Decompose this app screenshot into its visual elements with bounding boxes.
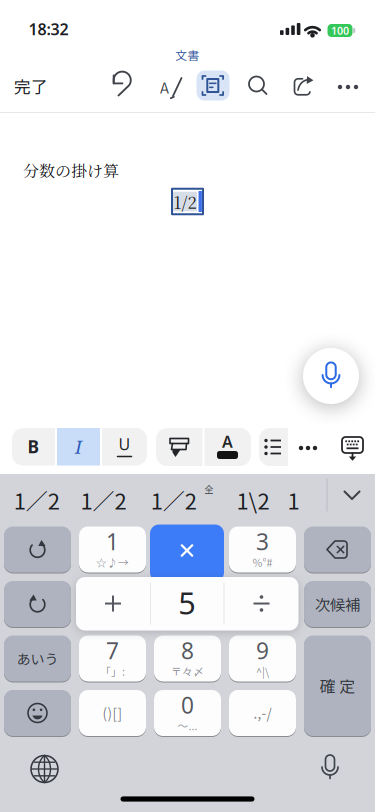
staticText: ☆♪→ [96,554,129,570]
button[interactable]: × [150,524,224,581]
staticText: 完了 [14,74,48,98]
button[interactable]: 1／2 [74,478,132,518]
button[interactable]: Dictate [303,348,359,404]
button[interactable]: Bullets [259,428,288,466]
staticText: B [27,435,39,458]
button[interactable]: 1 [79,526,146,572]
button[interactable]: 3 [229,526,296,572]
button[interactable]: Proofing [152,70,186,103]
staticText: 全 [204,482,213,496]
button[interactable]: 1\2 [235,478,271,518]
button[interactable]: 9 [229,635,296,681]
button[interactable]: 確定 [304,635,371,736]
button[interactable]: 5 [150,577,224,630]
staticText: 1 [106,526,119,556]
staticText: 5 [178,582,196,623]
button[interactable]: 1／2 [8,478,66,518]
staticText: 1/2 [173,189,196,213]
staticText: 0 [181,690,194,720]
button[interactable]: Highlight [156,428,202,466]
button[interactable]: Undo [106,70,140,103]
staticText: %°# [252,554,272,570]
button[interactable]: .,-/ [229,690,296,736]
staticText: 18:32 [28,18,68,40]
staticText: 〒々〆 [171,663,204,679]
staticText: 1／2 [14,484,60,516]
button[interactable]: Share [286,68,318,102]
staticText: あいう [16,648,58,669]
button[interactable]: Text box [196,70,229,100]
button[interactable]: More [332,73,364,101]
staticText: 「」: [100,663,125,679]
button[interactable]: Dictation [314,750,346,786]
staticText: 8 [181,635,194,665]
button[interactable]: Kana [4,635,71,681]
button[interactable]: 7 [79,635,146,681]
button[interactable]: 完了 [10,71,52,101]
staticText: 9 [256,635,269,665]
button[interactable]: Delete [304,526,371,572]
button[interactable]: Emoji [4,690,71,736]
button[interactable]: Next keyboard [28,752,62,786]
staticText: 1／2 [80,484,126,516]
staticText: 1 [287,484,299,516]
staticText: 1\2 [236,484,269,516]
staticText: 確 定 [319,674,355,697]
staticText: ^|\ [256,663,269,679]
staticText: 7 [106,635,119,665]
button[interactable]: Next candidate [304,581,371,627]
button[interactable]: Font colour [204,428,251,466]
staticText: 100 [331,23,349,38]
staticText: U [118,433,130,455]
staticText: 文書 [175,46,199,63]
staticText: 1／2 [151,484,197,516]
button[interactable]: Bold [12,428,55,465]
button[interactable]: Italic [57,428,100,465]
staticText: 〜... [177,718,197,733]
button[interactable]: Underline [102,428,147,465]
button[interactable]: Collapse suggestions [336,480,368,510]
button[interactable]: Redo [4,526,71,572]
button[interactable]: Hide keyboard [337,430,369,462]
button[interactable]: ()[] [79,690,146,736]
staticText: 分数の掛け算 [23,158,119,181]
staticText: 次候補 [315,593,360,615]
staticText: 3 [256,526,269,556]
button[interactable]: More formatting [291,433,325,463]
staticText: I [75,434,82,459]
button[interactable]: 0 [154,690,221,736]
button[interactable]: + [76,577,150,630]
button[interactable]: 8 [154,635,221,681]
button[interactable]: 1／2 [145,478,203,518]
staticText: .,-/ [253,703,271,723]
staticText: A [222,431,233,452]
button[interactable]: ÷ [224,577,298,630]
staticText: ()[] [102,703,122,723]
button[interactable]: Search [242,70,274,102]
button[interactable]: 1 [282,478,304,518]
button[interactable]: Undo [4,581,71,627]
staticText: A [160,76,169,98]
